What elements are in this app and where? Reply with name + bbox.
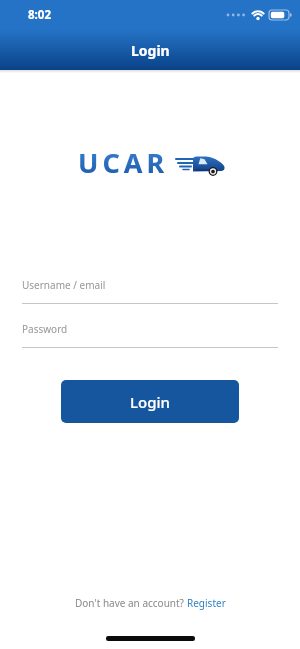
button[interactable]: Password: [22, 319, 278, 348]
staticText: UCAR: [78, 144, 169, 181]
staticText: Login: [130, 392, 170, 412]
staticText: Login: [131, 41, 170, 60]
staticText: 8:02: [28, 7, 51, 23]
button[interactable]: Login: [61, 380, 239, 423]
staticText: Register: [187, 596, 226, 610]
staticText: Don't have an account?: [75, 596, 187, 610]
staticText: Username / email: [22, 278, 106, 292]
button[interactable]: Username / email: [22, 275, 278, 304]
button[interactable]: Register: [187, 596, 226, 610]
staticText: Password: [22, 322, 68, 336]
